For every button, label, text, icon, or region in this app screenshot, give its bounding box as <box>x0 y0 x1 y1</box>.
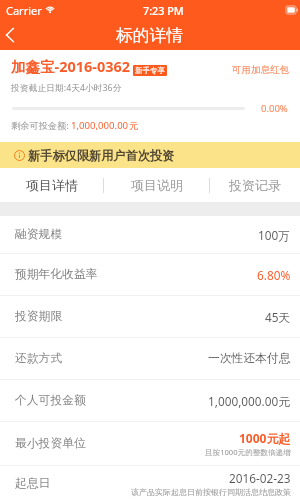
staticText: 投资截止日期:4天4小时36分 <box>11 82 122 94</box>
staticText: 融资规模 <box>15 227 63 242</box>
staticText: 6.80% <box>257 267 291 283</box>
staticText: 元 <box>129 120 139 132</box>
staticText: 投资期限 <box>15 309 63 324</box>
staticText: 最小投资单位 <box>15 436 86 451</box>
button[interactable]: 最小投资单位 <box>15 422 291 465</box>
staticText: 一次性还本付息 <box>208 351 291 366</box>
staticText: 1,000,000.00 <box>71 119 129 132</box>
staticText: 起息日 <box>15 476 51 491</box>
staticText: 可用加息红包 <box>232 64 289 76</box>
button[interactable]: 投资记录 <box>210 168 300 202</box>
staticText: 100万 <box>258 227 291 243</box>
staticText: 投资记录 <box>229 177 281 193</box>
button[interactable]: 融资规模 <box>15 216 291 253</box>
staticText: Carrier <box>6 3 42 18</box>
staticText: 该产品实际起息日前按银行同期活息结息政策 <box>131 487 291 497</box>
staticText: 1000元起 <box>239 430 291 446</box>
staticText: 45天 <box>265 309 291 325</box>
button[interactable]: 个人可投金额 <box>15 380 291 421</box>
button[interactable]: 投资期限 <box>15 296 291 337</box>
staticText: 还款方式 <box>15 351 63 366</box>
button[interactable]: 项目详情 <box>0 168 103 202</box>
staticText: 且按1000元的整数倍递增 <box>205 447 291 457</box>
staticText: 新手标仅限新用户首次投资 <box>28 148 175 163</box>
staticText: 项目说明 <box>131 177 183 193</box>
staticText: 加鑫宝-2016-0362 <box>11 56 131 76</box>
staticText: 0.00% <box>261 102 288 115</box>
staticText: 个人可投金额 <box>15 393 86 408</box>
button[interactable]: 项目说明 <box>104 168 209 202</box>
staticText: 新手专享 <box>135 66 165 75</box>
staticText: 7:23 PM <box>143 3 184 18</box>
staticText: 剩余可投金额: <box>11 119 71 132</box>
button[interactable]: 起息日 <box>15 466 291 500</box>
button[interactable]: Back <box>0 20 20 50</box>
staticText: 预期年化收益率 <box>15 267 98 282</box>
staticText: 1,000,000.00元 <box>208 393 291 409</box>
staticText: 项目详情 <box>26 177 78 193</box>
staticText: 标的详情 <box>116 25 184 46</box>
button[interactable]: 预期年化收益率 <box>15 254 291 295</box>
button[interactable]: 还款方式 <box>15 338 291 379</box>
staticText: 2016-02-23 <box>229 470 291 486</box>
